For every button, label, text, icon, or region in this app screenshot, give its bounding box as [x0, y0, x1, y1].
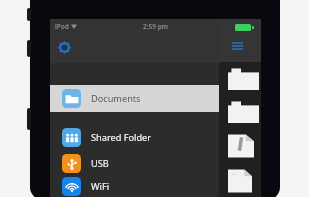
button[interactable]: USB: [50, 150, 219, 176]
staticText: Shared Folder: [91, 131, 152, 144]
staticText: 2:59 pm: [143, 22, 168, 31]
button[interactable]: Document: [228, 169, 252, 193]
button[interactable]: Settings: [54, 37, 74, 57]
button[interactable]: Menu: [229, 38, 245, 54]
button[interactable]: Folder: [228, 68, 259, 90]
button[interactable]: WiFi: [50, 176, 219, 197]
button[interactable]: Document: [228, 134, 254, 158]
staticText: USB: [91, 157, 109, 170]
button[interactable]: Folder: [228, 101, 259, 123]
button[interactable]: Documents: [50, 85, 219, 112]
staticText: iPod: [55, 22, 69, 31]
staticText: WiFi: [91, 180, 110, 193]
staticText: Documents: [91, 92, 141, 105]
button[interactable]: Shared Folder: [50, 124, 219, 150]
